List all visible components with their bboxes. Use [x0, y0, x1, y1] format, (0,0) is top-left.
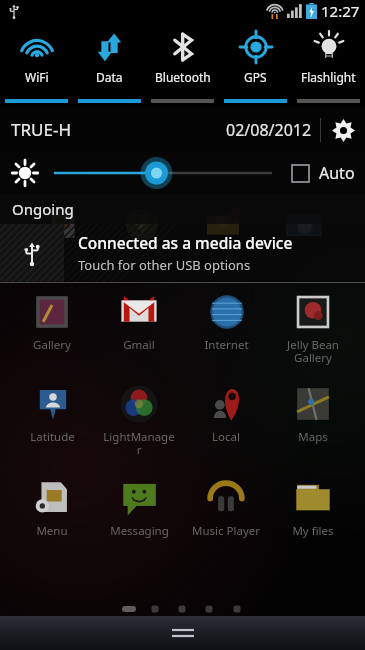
button[interactable]: Menu: [9, 476, 95, 552]
staticText: Music Player: [192, 523, 260, 539]
staticText: Gallery: [33, 337, 71, 353]
staticText: WiFi: [25, 69, 49, 85]
staticText: Ongoing: [12, 199, 74, 219]
staticText: Latitude: [30, 429, 75, 445]
staticText: Gmail: [123, 337, 155, 353]
staticText: Maps: [298, 429, 328, 445]
button[interactable]: My files: [270, 476, 356, 552]
button[interactable]: Messaging: [96, 476, 182, 552]
button[interactable]: Bluetooth: [146, 22, 219, 107]
button[interactable]: Gallery: [9, 290, 95, 366]
staticText: Connected as a media device: [78, 232, 293, 253]
button[interactable]: Music Player: [183, 476, 269, 552]
staticText: LightManage r: [103, 429, 175, 458]
button[interactable]: Internet: [183, 290, 269, 366]
button[interactable]: LightManage r: [96, 382, 182, 458]
staticText: Menu: [36, 523, 68, 539]
staticText: Jelly Bean Gallery: [287, 337, 339, 366]
staticText: 02/08/2012: [226, 119, 312, 141]
staticText: 12:27: [321, 1, 360, 21]
button[interactable]: Menu: [0, 616, 365, 650]
button[interactable]: Connected as a media device: [0, 224, 365, 282]
staticText: Flashlight: [301, 69, 356, 85]
staticText: Internet: [204, 337, 249, 353]
button[interactable]: Gmail: [96, 290, 182, 366]
button[interactable]: Maps: [270, 382, 356, 458]
button[interactable]: Latitude: [9, 382, 95, 458]
button[interactable]: Jelly Bean Gallery: [270, 290, 356, 366]
staticText: GPS: [244, 69, 267, 85]
button[interactable]: Brightness slider: [48, 153, 280, 193]
staticText: My files: [292, 523, 334, 539]
button[interactable]: Data: [73, 22, 146, 107]
button[interactable]: Settings: [321, 108, 365, 152]
staticText: Data: [96, 69, 123, 85]
staticText: Touch for other USB options: [78, 256, 251, 274]
button[interactable]: GPS: [219, 22, 292, 107]
staticText: Auto: [319, 162, 355, 184]
button[interactable]: Local: [183, 382, 269, 458]
staticText: Messaging: [110, 523, 169, 539]
button[interactable]: Auto: [291, 162, 355, 184]
button[interactable]: WiFi: [0, 22, 73, 107]
staticText: Bluetooth: [155, 69, 211, 85]
button[interactable]: Flashlight: [292, 22, 365, 107]
staticText: Local: [212, 429, 240, 445]
button[interactable]: Brightness: [8, 156, 42, 190]
staticText: TRUE-H: [11, 118, 71, 141]
